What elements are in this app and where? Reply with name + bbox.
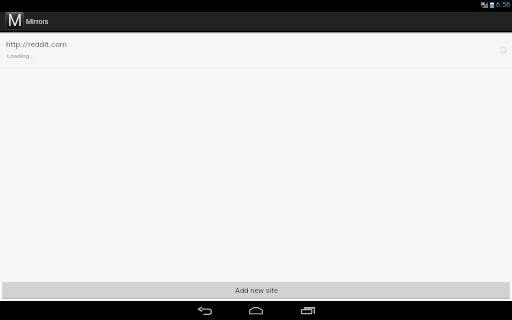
- staticText: M: [8, 11, 22, 29]
- staticText: Mirrors: [26, 18, 49, 26]
- button[interactable]: Add new site: [2, 282, 510, 299]
- button[interactable]: Back: [181, 301, 229, 320]
- button[interactable]: M: [0, 12, 512, 31]
- button[interactable]: Home: [232, 301, 280, 320]
- button[interactable]: Recent apps: [284, 301, 332, 320]
- staticText: Loading...: [7, 52, 35, 59]
- staticText: Add new site: [235, 286, 278, 295]
- staticText: 6:56: [496, 0, 511, 9]
- staticText: http://reddit.com: [6, 39, 67, 48]
- button[interactable]: http://reddit.com: [0, 35, 512, 68]
